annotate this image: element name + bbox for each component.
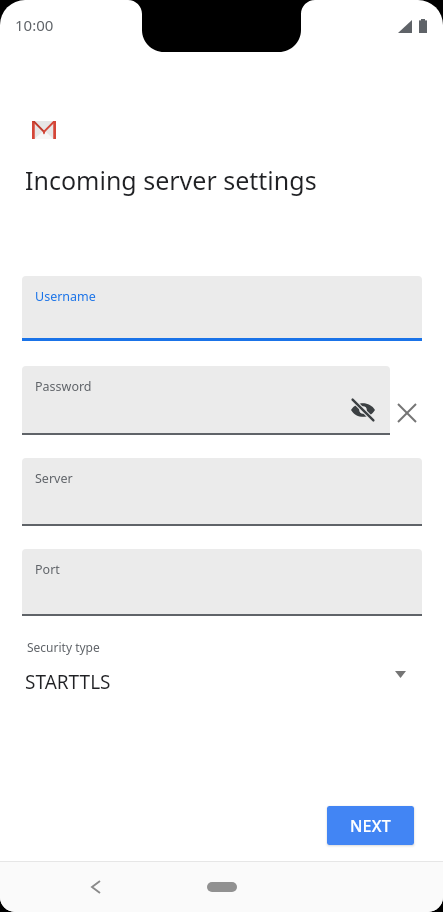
button[interactable]: Clear password (390, 396, 423, 429)
staticText: NEXT (350, 815, 391, 837)
staticText: Incoming server settings (25, 163, 317, 197)
staticText: Server (35, 470, 73, 487)
button[interactable]: NEXT (327, 806, 414, 845)
button[interactable]: Server (22, 458, 422, 526)
staticText: 10:00 (15, 15, 54, 35)
staticText: Password (35, 378, 92, 395)
button[interactable]: Password (22, 366, 390, 435)
button[interactable]: Port (22, 549, 422, 616)
staticText: Username (35, 288, 96, 305)
button[interactable]: Security type (22, 634, 421, 694)
button[interactable]: Home (207, 882, 237, 892)
staticText: Port (35, 561, 60, 578)
staticText: STARTTLS (25, 669, 111, 695)
button[interactable]: Username (22, 276, 422, 341)
staticText: Security type (27, 639, 100, 655)
button[interactable]: Back (78, 869, 114, 905)
button[interactable]: Show password (349, 398, 377, 422)
